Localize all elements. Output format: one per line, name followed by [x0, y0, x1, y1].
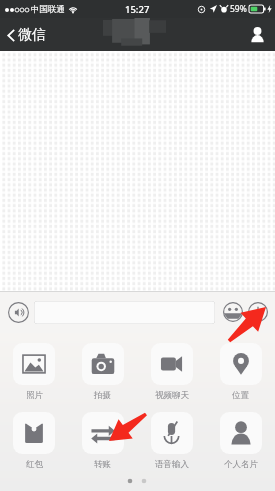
button[interactable]: Voice input — [5, 299, 31, 325]
staticText: 视频聊天 — [155, 390, 189, 401]
staticText: 转账 — [94, 459, 111, 470]
staticText: 语音输入 — [155, 459, 189, 470]
button[interactable]: More attachments — [246, 300, 270, 324]
button[interactable]: 拍摄 — [68, 343, 137, 401]
staticText: 个人名片 — [224, 459, 258, 470]
staticText: 位置 — [232, 390, 249, 401]
staticText: 微信 — [18, 26, 46, 44]
button[interactable]: 个人名片 — [206, 412, 275, 470]
button[interactable]: 红包 — [0, 412, 68, 470]
button[interactable]: 照片 — [0, 343, 68, 401]
button[interactable]: Contact info — [240, 20, 275, 49]
button[interactable]: 微信 — [0, 21, 54, 49]
staticText: 红包 — [26, 459, 43, 470]
button[interactable] — [34, 301, 215, 324]
button[interactable]: 转账 — [68, 412, 137, 470]
button[interactable]: 语音输入 — [137, 412, 206, 470]
staticText: 15:27 — [125, 3, 150, 16]
button[interactable]: 位置 — [206, 343, 275, 401]
staticText: 59% — [230, 3, 247, 15]
button[interactable]: 视频聊天 — [137, 343, 206, 401]
staticText: 照片 — [26, 390, 43, 401]
staticText: 拍摄 — [94, 390, 111, 401]
button[interactable]: Emoji — [221, 300, 245, 324]
staticText: 中国联通 — [31, 4, 65, 15]
